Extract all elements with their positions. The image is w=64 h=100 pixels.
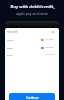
staticText: •••• 4921 [45, 38, 54, 41]
staticText: apple pay and more [16, 11, 48, 16]
staticText: Transfer [45, 46, 54, 49]
button[interactable]: Continue [9, 93, 55, 100]
staticText: Pay with [7, 30, 18, 33]
staticText: Total [7, 53, 13, 56]
staticText: Continue [26, 96, 39, 100]
staticText: Bank [7, 46, 13, 49]
staticText: Card [7, 38, 13, 41]
button[interactable]: Card [7, 38, 54, 41]
staticText: 100 USD [45, 53, 54, 56]
button[interactable]: Pay with [7, 30, 54, 33]
staticText: Buy with debit/credit, [10, 4, 55, 10]
button[interactable]: Bank [7, 46, 54, 49]
